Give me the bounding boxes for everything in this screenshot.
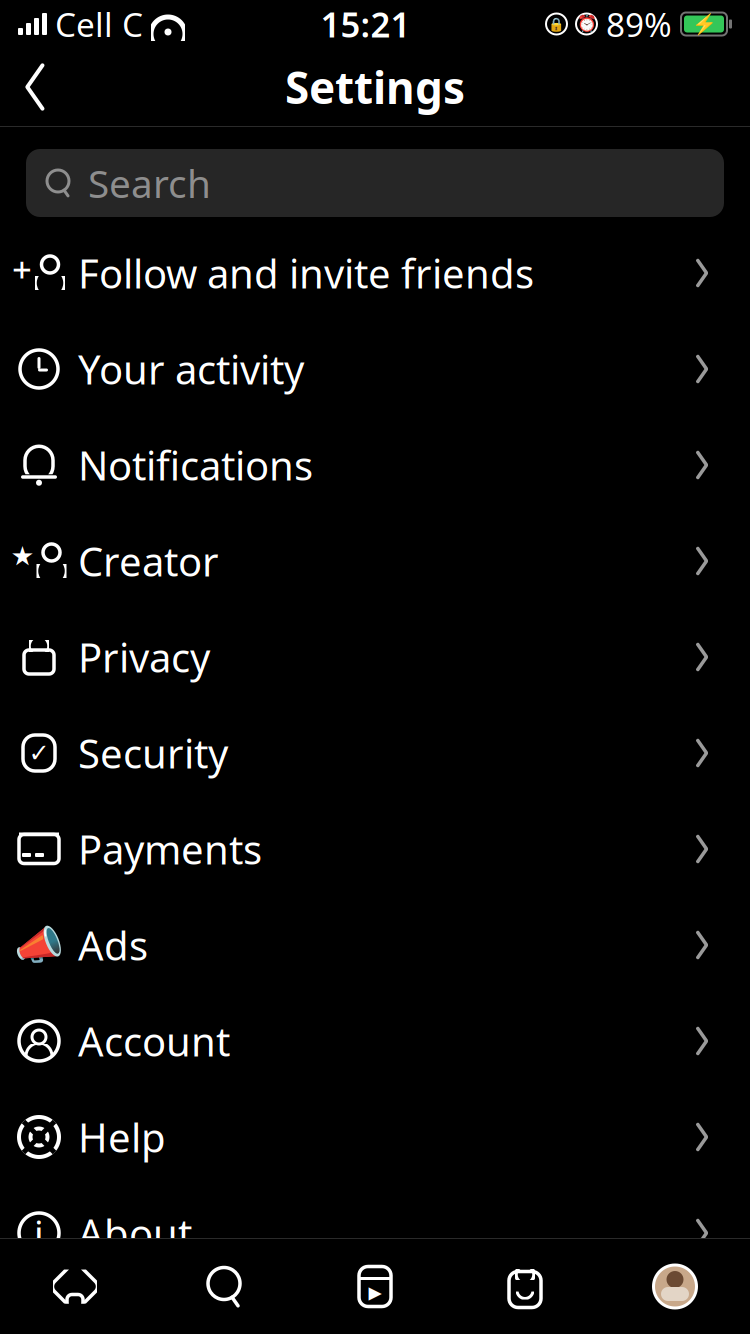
staticText: 📣	[14, 922, 64, 968]
button[interactable]: Notifications	[0, 417, 750, 513]
staticText: Your activity	[78, 342, 304, 395]
staticText: Creator	[78, 534, 219, 587]
staticText: Cell C	[55, 2, 143, 46]
button[interactable]: Help	[0, 1089, 750, 1185]
staticText: ★	[10, 541, 34, 571]
button[interactable]: Privacy	[0, 609, 750, 705]
button[interactable]: Profile	[600, 1239, 750, 1334]
staticText: 🔒	[548, 16, 565, 32]
staticText: Security	[78, 726, 228, 779]
button[interactable]: ✓	[0, 705, 750, 801]
staticText: Payments	[78, 822, 262, 875]
staticText: ⚡	[691, 13, 716, 35]
button[interactable]: 📣	[0, 897, 750, 993]
staticText: i	[34, 1212, 43, 1254]
staticText: Search	[88, 157, 211, 209]
staticText: +	[12, 246, 32, 292]
button[interactable]: Home	[0, 1239, 150, 1334]
button[interactable]: i	[0, 1185, 750, 1281]
staticText: ⏰	[576, 15, 596, 33]
staticText: Settings	[285, 58, 465, 116]
button[interactable]: +	[0, 225, 750, 321]
button[interactable]: Search	[150, 1239, 300, 1334]
button[interactable]: Payments	[0, 801, 750, 897]
button[interactable]: Reels	[300, 1239, 450, 1334]
button[interactable]: Shop	[450, 1239, 600, 1334]
button[interactable]: Your activity	[0, 321, 750, 417]
staticText: 89%	[606, 2, 672, 46]
staticText: Account	[78, 1014, 230, 1067]
staticText: 15:21	[320, 1, 410, 47]
staticText: Notifications	[78, 438, 313, 491]
button[interactable]: Account	[0, 993, 750, 1089]
staticText: Help	[78, 1110, 166, 1163]
staticText: ✓	[28, 739, 49, 767]
button[interactable]: Back	[0, 52, 70, 122]
staticText: About	[78, 1206, 192, 1259]
button[interactable]: Search	[26, 149, 724, 217]
button[interactable]: ★	[0, 513, 750, 609]
staticText: Privacy	[78, 630, 210, 683]
staticText: Ads	[78, 918, 148, 971]
staticText: ▶	[368, 1283, 381, 1302]
staticText: Follow and invite friends	[78, 246, 534, 299]
